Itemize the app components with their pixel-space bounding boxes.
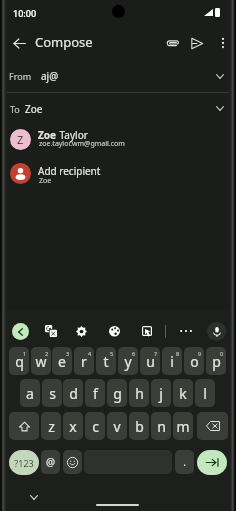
staticText: d	[69, 384, 78, 403]
button[interactable]: .	[175, 450, 194, 474]
button[interactable]: d	[63, 379, 83, 407]
staticText: g	[113, 384, 122, 403]
staticText: p	[212, 352, 221, 371]
staticText: l	[203, 384, 207, 403]
button[interactable]: Previous suggestions	[12, 323, 29, 340]
button[interactable]: k	[173, 379, 193, 407]
button[interactable]: Theme	[104, 321, 124, 341]
staticText: 6	[132, 350, 136, 357]
staticText: i	[170, 352, 174, 371]
button[interactable]: Shift	[9, 412, 39, 440]
button[interactable]: From	[0, 60, 236, 92]
staticText: z	[48, 417, 55, 436]
staticText: Add recipient	[38, 164, 101, 178]
staticText: r	[81, 352, 87, 371]
staticText: 3	[66, 350, 70, 357]
staticText: 0	[220, 350, 224, 357]
button[interactable]: Send	[184, 31, 208, 55]
staticText: c	[92, 417, 99, 436]
button[interactable]: Enter	[197, 450, 227, 475]
button[interactable]: z	[41, 412, 61, 440]
button[interactable]: l	[195, 379, 215, 407]
staticText: 5	[110, 350, 114, 357]
button[interactable]: r	[74, 347, 94, 375]
button[interactable]: i	[162, 347, 182, 375]
button[interactable]: Add recipient	[0, 160, 236, 193]
staticText: 1	[23, 350, 27, 357]
button[interactable]: f	[85, 379, 105, 407]
staticText: From	[9, 70, 32, 82]
staticText: s	[49, 384, 56, 403]
staticText: ?123	[14, 457, 34, 469]
button[interactable]: Settings	[71, 321, 91, 341]
staticText: e	[58, 352, 66, 371]
staticText: 4	[88, 350, 92, 357]
button[interactable]: b	[129, 412, 149, 440]
staticText: @	[46, 455, 55, 469]
button[interactable]: More options	[176, 321, 196, 341]
button[interactable]: j	[151, 379, 171, 407]
button[interactable]: To	[0, 93, 236, 125]
button[interactable]: @	[41, 450, 60, 474]
staticText: j	[159, 384, 163, 403]
button[interactable]: Attach file	[160, 31, 184, 55]
staticText: m	[176, 417, 190, 436]
staticText: aj@	[41, 69, 59, 83]
staticText: k	[179, 384, 187, 403]
button[interactable]: x	[63, 412, 83, 440]
staticText: Zoe	[25, 102, 43, 116]
staticText: n	[157, 417, 166, 436]
staticText: Zoe	[39, 176, 52, 186]
staticText: u	[146, 352, 155, 371]
staticText: x	[69, 417, 77, 436]
button[interactable]: Stickers	[137, 321, 157, 341]
button[interactable]: o	[184, 347, 204, 375]
button[interactable]: Z	[0, 126, 236, 159]
button[interactable]: Backspace	[197, 412, 228, 440]
button[interactable]: Hide keyboard	[25, 489, 42, 506]
button[interactable]: w	[31, 347, 51, 375]
staticText: 7	[154, 350, 158, 357]
button[interactable]: c	[85, 412, 105, 440]
button[interactable]: More options	[211, 31, 235, 55]
staticText: 2	[45, 350, 49, 357]
button[interactable]: Back	[7, 31, 31, 55]
staticText: v	[113, 417, 121, 436]
staticText: b	[135, 417, 144, 436]
staticText: Z	[17, 132, 24, 147]
staticText: y	[124, 352, 132, 371]
button[interactable]: n	[151, 412, 171, 440]
button[interactable]: m	[173, 412, 193, 440]
button[interactable]: v	[107, 412, 127, 440]
button[interactable]: Translate	[41, 321, 61, 341]
button[interactable]: a	[20, 379, 40, 407]
button[interactable]: u	[140, 347, 160, 375]
staticText: a	[26, 384, 34, 403]
staticText: w	[35, 352, 47, 371]
staticText: Compose	[35, 33, 93, 51]
staticText: zoe.taylor.wm@gmail.com	[39, 139, 125, 149]
staticText: o	[190, 352, 199, 371]
staticText: 8	[176, 350, 180, 357]
staticText: t	[103, 352, 109, 371]
staticText: To	[10, 103, 20, 115]
button[interactable]: Voice input	[207, 322, 226, 341]
staticText: 9	[198, 350, 202, 357]
button[interactable]: g	[107, 379, 127, 407]
staticText: Taylor	[57, 128, 88, 142]
button[interactable]: Emoji	[63, 450, 82, 474]
button[interactable]: q	[9, 347, 29, 375]
button[interactable]: t	[96, 347, 116, 375]
staticText: 10:00	[13, 7, 37, 19]
staticText: Zoe	[38, 128, 57, 142]
staticText: q	[15, 352, 24, 371]
staticText: h	[135, 384, 144, 403]
button[interactable]: p	[206, 347, 226, 375]
button[interactable]: ?123	[9, 450, 39, 475]
button[interactable]: s	[42, 379, 62, 407]
button[interactable]: e	[52, 347, 72, 375]
button[interactable]: y	[118, 347, 138, 375]
staticText: .	[183, 455, 186, 469]
button[interactable]: h	[129, 379, 149, 407]
